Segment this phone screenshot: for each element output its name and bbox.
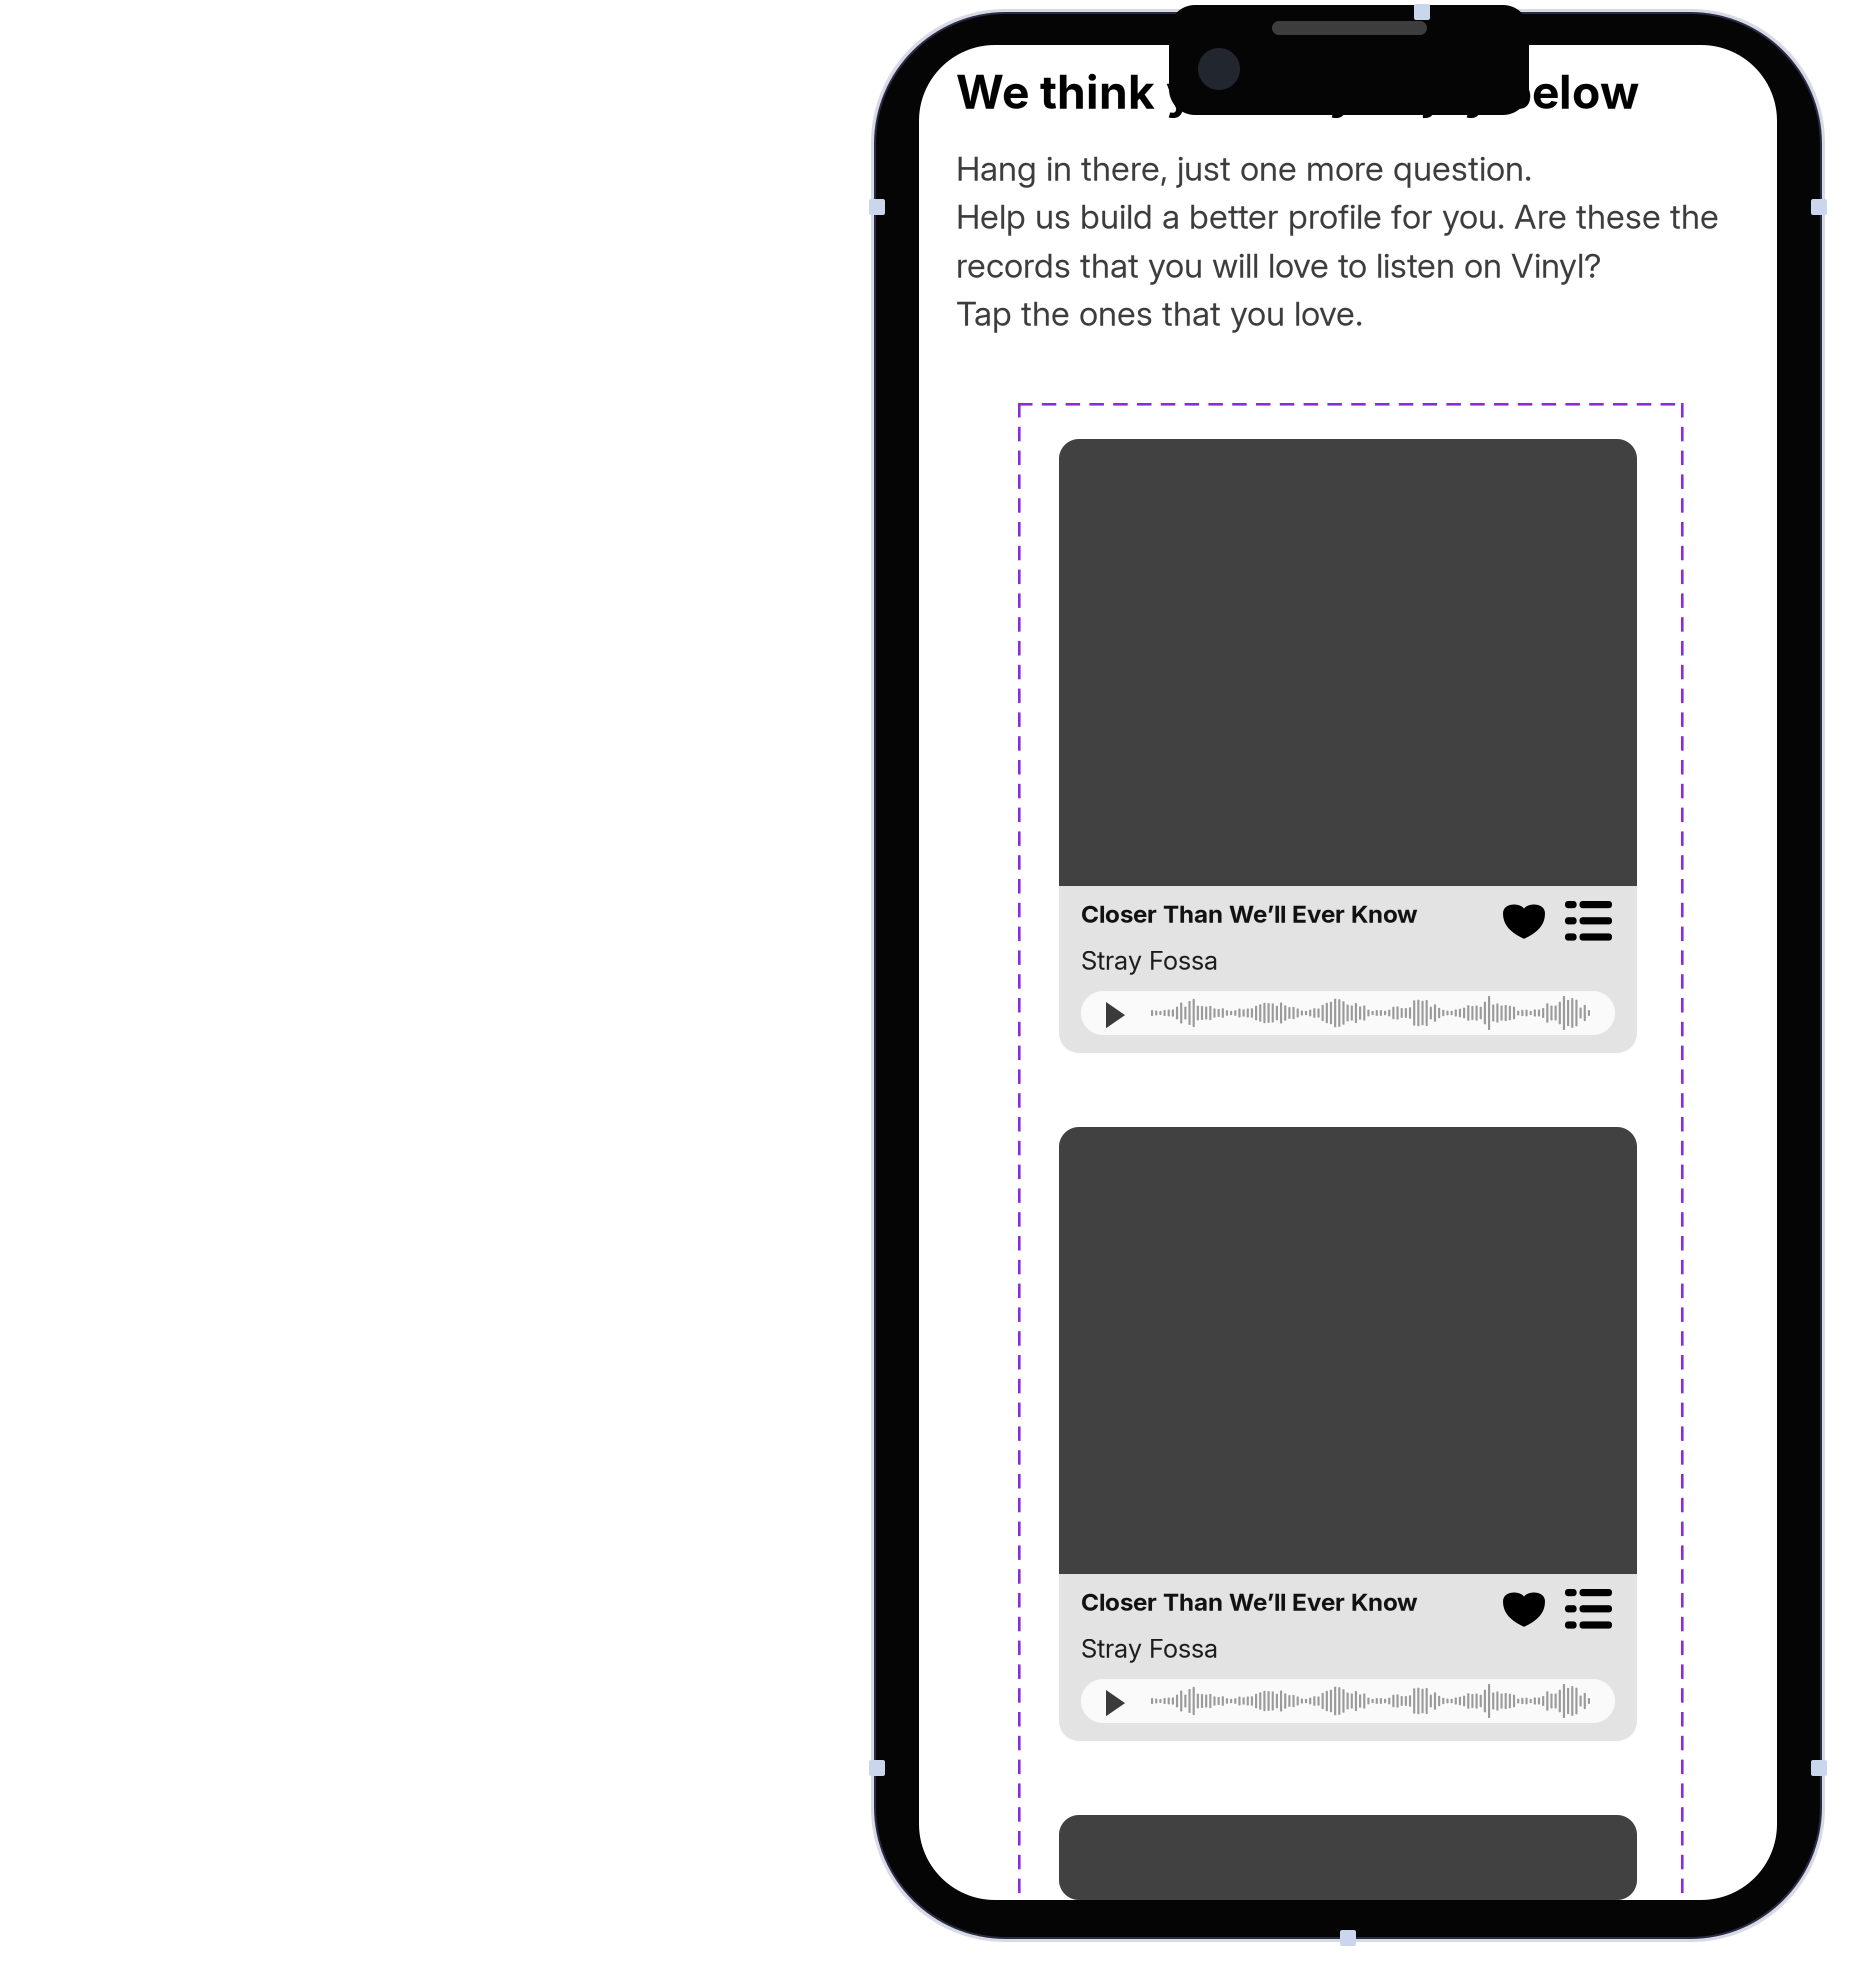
staticText: Help us build a better profile for you. …: [956, 196, 1719, 237]
staticText: Stray Fossa: [1081, 1633, 1218, 1664]
staticText: Stray Fossa: [1081, 945, 1218, 976]
staticText: records that you will love to listen on …: [956, 245, 1602, 286]
staticText: Closer Than We’ll Ever Know: [1081, 1587, 1418, 1616]
staticText: Hang in there, just one more question.: [956, 148, 1532, 189]
staticText: Closer Than We’ll Ever Know: [1081, 899, 1418, 928]
staticText: Tap the ones that you love.: [956, 293, 1363, 334]
staticText: We think you may enjoy below: [956, 64, 1639, 120]
